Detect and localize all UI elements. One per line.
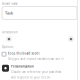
staticText: Personalization [11,65,34,68]
staticText: Task [5,10,13,16]
button[interactable]: Personalization [2,65,76,79]
staticText: Claude can reference your past chats [11,70,61,74]
staticText: Only you and invited members can see it [7,57,63,61]
staticText: Board name [2,2,18,5]
staticText: Options [2,45,13,49]
button[interactable]: Keep this board secret [2,52,76,61]
button[interactable]: Add attachment [6,36,12,42]
button[interactable]: Task [2,6,77,19]
staticText: Keep this board secret [7,52,39,55]
staticText: Description [2,30,18,34]
staticText: and respond to your needs [11,76,50,79]
button[interactable]: Record [68,36,74,42]
